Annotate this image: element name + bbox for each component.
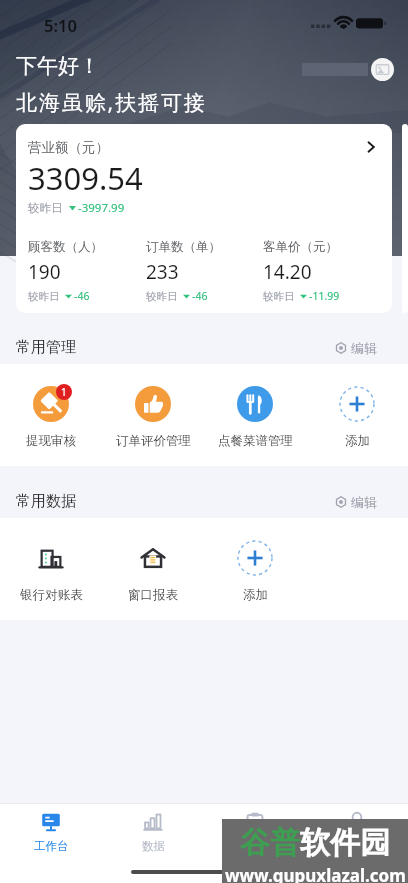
button[interactable]: 添加 [204, 518, 306, 620]
button[interactable]: 银行对账表 [0, 518, 102, 620]
staticText: 谷普 [240, 824, 300, 862]
button[interactable]: 窗口报表 [102, 518, 204, 620]
button[interactable]: 订单 [204, 804, 306, 859]
staticText: 编辑 [351, 340, 377, 356]
staticText: 顾客数（人） [28, 239, 103, 255]
staticText: 常用管理 [16, 338, 76, 357]
staticText: 营业额（元） [28, 139, 109, 156]
staticText: 较昨日 [146, 290, 178, 303]
staticText: www.gupuxlazal.com [225, 864, 406, 883]
button[interactable]: 1 [0, 364, 102, 466]
staticText: 订单评价管理 [116, 433, 191, 449]
staticText: 我的 [346, 839, 369, 853]
staticText: 较昨日 [28, 201, 63, 215]
staticText: -46 [74, 289, 90, 303]
staticText: 较昨日 [263, 290, 295, 303]
staticText: 3309.54 [28, 157, 143, 199]
staticText: 订单数（单） [146, 239, 221, 255]
staticText: -3997.99 [78, 200, 125, 216]
staticText: 添加 [243, 587, 268, 603]
staticText: 点餐菜谱管理 [218, 433, 293, 449]
staticText: 提现审核 [26, 433, 76, 449]
staticText: 北海虽赊,扶摇可接 [16, 88, 207, 117]
staticText: 窗口报表 [128, 587, 178, 603]
button[interactable]: 数据 [102, 804, 204, 859]
staticText: 客单价（元） [263, 239, 338, 255]
staticText: 数据 [142, 839, 165, 853]
staticText: 工作台 [34, 839, 69, 853]
staticText: 编辑 [351, 494, 377, 510]
staticText: 软件园 [300, 824, 390, 862]
button[interactable]: 订单评价管理 [102, 364, 204, 466]
staticText: 订单 [244, 839, 267, 853]
button[interactable]: 我的 [306, 804, 408, 859]
button[interactable]: 编辑 [333, 490, 379, 514]
staticText: 下午好！ [16, 53, 100, 79]
button[interactable]: 编辑 [333, 336, 379, 360]
staticText: 1 [61, 385, 67, 399]
staticText: 银行对账表 [20, 587, 83, 603]
button[interactable]: 营业额（元） [16, 124, 392, 313]
staticText: 较昨日 [28, 290, 60, 303]
button[interactable]: 点餐菜谱管理 [204, 364, 306, 466]
button[interactable]: More [362, 138, 380, 156]
staticText: -11.99 [309, 289, 340, 303]
staticText: 233 [146, 259, 179, 285]
button[interactable]: 添加 [306, 364, 408, 466]
button[interactable]: 工作台 [0, 804, 102, 859]
staticText: 14.20 [263, 259, 312, 285]
staticText: 常用数据 [16, 492, 76, 511]
button[interactable]: Profile [371, 58, 394, 81]
staticText: 添加 [345, 433, 370, 449]
staticText: -46 [192, 289, 208, 303]
staticText: 5:10 [44, 14, 77, 36]
staticText: 190 [28, 259, 61, 285]
